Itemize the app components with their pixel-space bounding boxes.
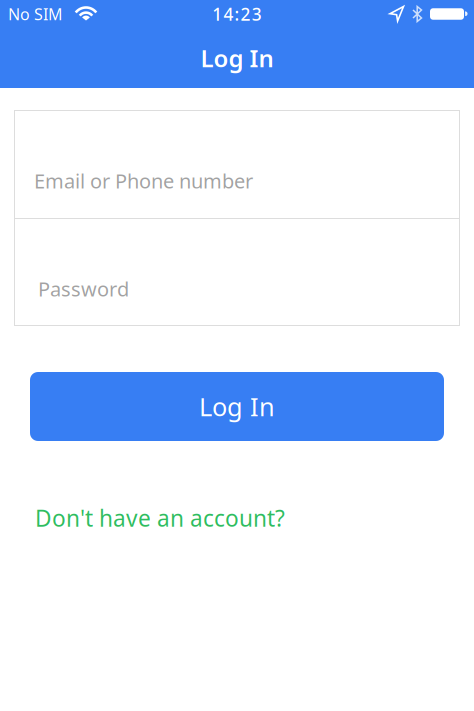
button[interactable]: Don't have an account?: [35, 503, 285, 533]
staticText: Log In: [200, 42, 273, 74]
staticText: Log In: [199, 390, 275, 423]
button[interactable]: Password: [14, 219, 460, 326]
staticText: Don't have an account?: [35, 503, 285, 533]
button[interactable]: Log In: [30, 372, 444, 441]
staticText: No SIM: [8, 3, 63, 25]
staticText: Password: [38, 275, 129, 302]
button[interactable]: Email or Phone number: [14, 110, 460, 218]
staticText: Email or Phone number: [34, 167, 253, 194]
staticText: 14:23: [212, 2, 262, 25]
